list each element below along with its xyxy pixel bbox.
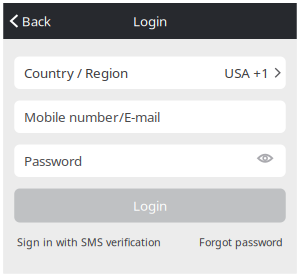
button[interactable]: Forgot password <box>199 235 283 249</box>
staticText: Sign in with SMS verification <box>17 235 161 249</box>
staticText: Login <box>133 197 167 214</box>
button[interactable]: Login <box>14 188 286 222</box>
staticText: Password <box>24 152 82 170</box>
button[interactable]: Password <box>14 144 286 177</box>
staticText: Country / Region <box>24 64 128 82</box>
staticText: USA +1 <box>224 64 269 82</box>
staticText: Forgot password <box>199 235 283 249</box>
button[interactable]: Country / Region <box>14 56 286 89</box>
staticText: Mobile number/E-mail <box>24 108 160 126</box>
staticText: Login <box>133 12 167 30</box>
staticText: Back <box>22 12 51 30</box>
button[interactable]: Back <box>3 3 59 39</box>
button[interactable]: Mobile number/E-mail <box>14 100 286 133</box>
button[interactable]: Sign in with SMS verification <box>17 235 161 249</box>
